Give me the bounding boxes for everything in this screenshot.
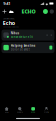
button[interactable]: Cloud sync: [8, 7, 15, 16]
button[interactable]: Home: [0, 105, 13, 115]
staticText: ECHO: [21, 8, 35, 15]
staticText: consectetur adipiscing: [3, 26, 19, 28]
staticText: Echo: [3, 19, 15, 27]
staticText: Nibus: [11, 31, 19, 35]
button[interactable]: Echo: [26, 105, 40, 115]
staticText: LOREM IPSUM DOL: [3, 18, 15, 20]
button[interactable]: New message: [1, 7, 8, 16]
staticText: Home: [5, 111, 9, 113]
button[interactable]: Explore: [13, 105, 26, 115]
staticText: Echo: [31, 111, 35, 113]
staticText: consectetur elit: [11, 35, 33, 39]
button[interactable]: Helping Emeline: [1, 42, 54, 53]
staticText: dolor sit amet: [11, 48, 30, 51]
staticText: Helping Emeline: [11, 44, 36, 47]
staticText: Explore: [17, 111, 23, 113]
button[interactable]: Account: [49, 7, 55, 16]
staticText: Profile: [44, 111, 49, 113]
staticText: 9:41: [3, 1, 10, 6]
button[interactable]: Profile: [40, 105, 53, 115]
button[interactable]: Nibus: [1, 30, 54, 41]
button[interactable]: Status: [42, 7, 49, 16]
